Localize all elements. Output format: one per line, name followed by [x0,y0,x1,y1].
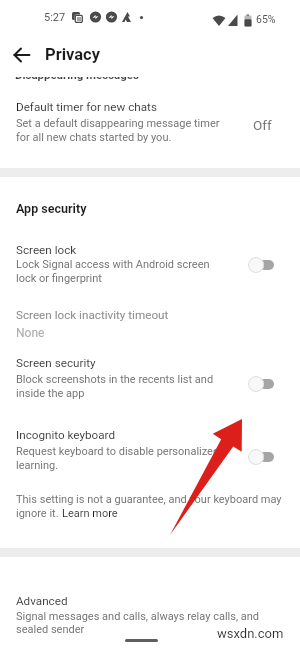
staticText: wsxdn.com [217,626,284,641]
staticText: Signal messages and calls, always relay … [16,610,260,623]
staticText: Disappearing messages [15,68,139,81]
staticText: learning. [16,459,59,472]
staticText: for all new chats started by you. [16,131,172,144]
staticText: Privacy [45,45,101,64]
button[interactable]: Screen security [0,348,300,408]
button[interactable]: Advanced [0,586,300,638]
staticText: lock or fingerprint [16,272,102,285]
staticText: Screen lock inactivity timeout [16,308,169,322]
staticText: Advanced [16,594,68,608]
staticText: sealed sender [16,623,85,636]
button[interactable]: Screen lock inactivity timeout [0,300,300,346]
staticText: Lock Signal access with Android screen [16,258,210,271]
staticText: Block screenshots in the recents list an… [16,373,214,386]
button[interactable]: Default timer for new chats [0,92,300,152]
button[interactable]: Screen lock [0,235,300,293]
button[interactable] [248,376,274,392]
staticText: ignore it. [16,507,62,520]
staticText: 5:27 [44,11,66,24]
staticText: Incognito keyboard [16,428,116,442]
button[interactable] [248,257,274,273]
button[interactable] [248,449,274,465]
staticText: Screen lock [16,243,77,257]
staticText: Off [253,117,272,133]
staticText: Request keyboard to disable personalized [16,445,220,458]
staticText: Set a default disappearing message timer [16,117,220,130]
staticText: inside the app [16,387,85,400]
button[interactable] [8,41,36,69]
staticText: This setting is not a guarantee, and you… [16,493,282,506]
staticText: Default timer for new chats [16,100,157,114]
button[interactable]: Incognito keyboard [0,420,300,480]
staticText: App security [16,201,87,216]
staticText: Screen security [16,356,96,370]
staticText: 65% [256,13,276,25]
staticText: None [16,326,45,340]
